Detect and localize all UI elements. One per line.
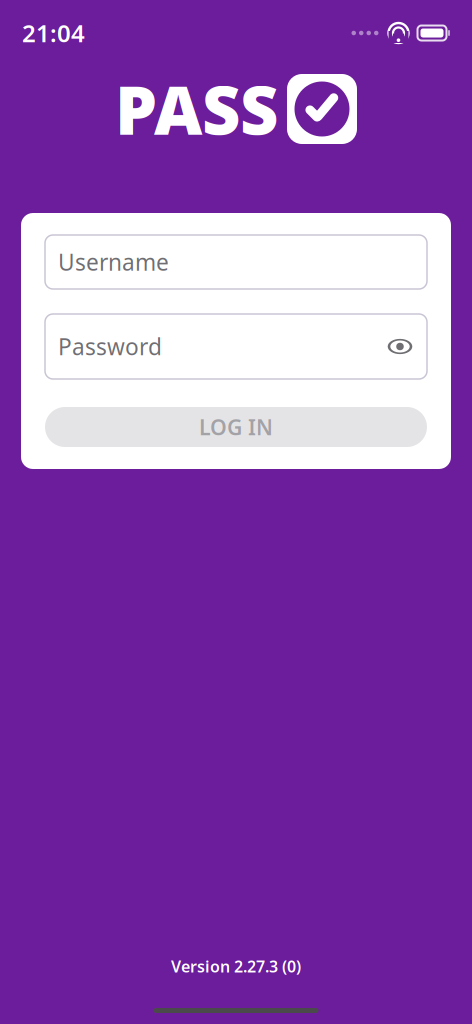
staticText: PASS (115, 65, 278, 153)
staticText: LOG IN (199, 413, 273, 441)
staticText: 21:04 (22, 17, 85, 49)
staticText: Username (58, 247, 169, 277)
staticText: Version 2.27.3 (0) (171, 956, 301, 977)
button[interactable]: Show password (380, 326, 420, 366)
button[interactable]: LOG IN (45, 407, 427, 447)
staticText: Password (58, 331, 162, 361)
